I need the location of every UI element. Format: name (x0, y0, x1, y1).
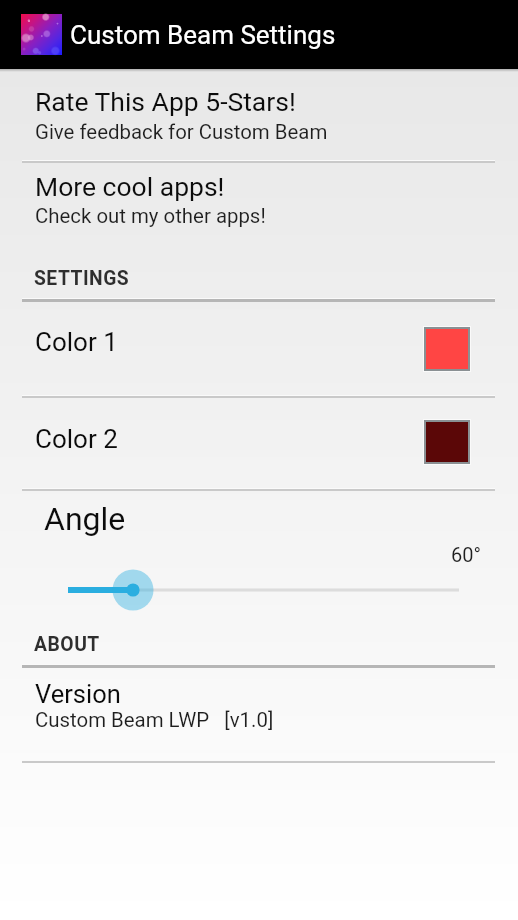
button[interactable]: Version (0, 668, 518, 761)
other: Angle slider (0, 566, 518, 614)
button[interactable]: Custom Beam app icon (21, 14, 62, 55)
staticText: Custom Beam LWP [v1.0] (35, 708, 274, 732)
staticText: Rate This App 5-Stars! (35, 86, 296, 117)
staticText: Check out my other apps! (35, 204, 266, 228)
button[interactable]: Angle (0, 490, 518, 618)
button[interactable]: Color 1, pick a colour (0, 302, 518, 396)
staticText: Color 2 (35, 424, 118, 454)
staticText: Angle (44, 500, 126, 538)
staticText: More cool apps! (35, 171, 225, 202)
staticText: Give feedback for Custom Beam (35, 120, 328, 144)
staticText: Version (35, 679, 121, 709)
staticText: Color 1 (35, 327, 118, 357)
staticText: SETTINGS (34, 267, 130, 290)
button[interactable]: More cool apps! (0, 162, 518, 251)
button[interactable]: Color 2, pick a colour (0, 397, 518, 489)
staticText: 60° (451, 543, 481, 566)
staticText: ABOUT (34, 633, 100, 656)
button[interactable]: Rate This App 5-Stars! (0, 71, 518, 160)
staticText: Custom Beam Settings (70, 20, 336, 50)
